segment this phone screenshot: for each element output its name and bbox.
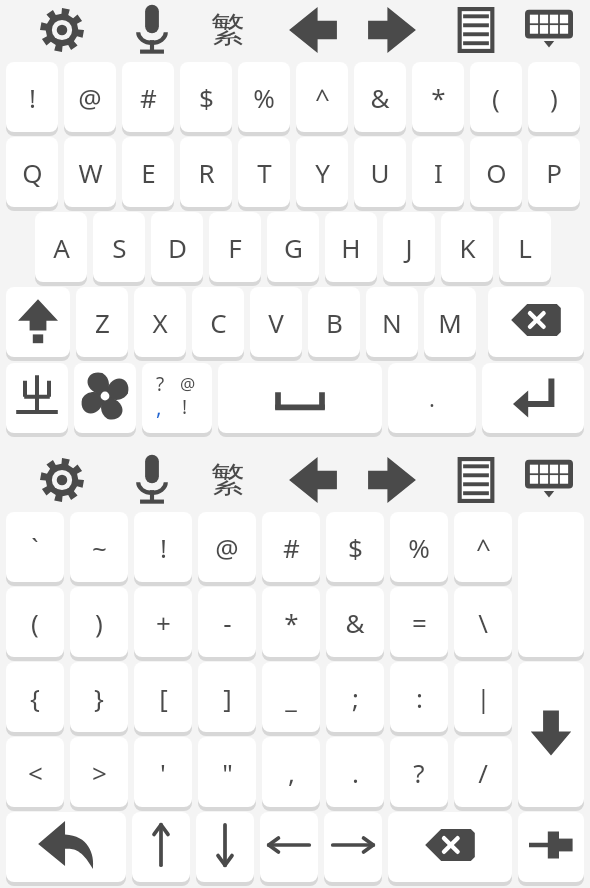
- button[interactable]: .: [326, 737, 384, 811]
- button[interactable]: !: [6, 62, 58, 136]
- button[interactable]: >: [70, 737, 128, 811]
- button[interactable]: ~: [70, 512, 128, 586]
- button[interactable]: /: [454, 737, 512, 811]
- staticText: ?: [156, 371, 165, 397]
- button[interactable]: Backspace: [488, 287, 584, 361]
- button[interactable]: H: [325, 212, 377, 286]
- button[interactable]: V: [250, 287, 302, 361]
- button[interactable]: Q: [6, 137, 58, 211]
- button[interactable]: Undo: [6, 812, 126, 886]
- button[interactable]: Up: [132, 812, 190, 886]
- button[interactable]: %: [238, 62, 290, 136]
- button[interactable]: G: [267, 212, 319, 286]
- button[interactable]: 繁: [198, 452, 258, 506]
- button[interactable]: ': [134, 737, 192, 811]
- button[interactable]: %: [390, 512, 448, 586]
- button[interactable]: Settings: [28, 4, 96, 56]
- button[interactable]: ;: [326, 662, 384, 736]
- button[interactable]: Settings: [28, 454, 96, 506]
- button[interactable]: N: [366, 287, 418, 361]
- button[interactable]: Space: [218, 363, 382, 437]
- button[interactable]: K: [441, 212, 493, 286]
- button[interactable]: Left: [260, 812, 318, 886]
- button[interactable]: Shift: [6, 287, 70, 361]
- button[interactable]: ^: [454, 512, 512, 586]
- button[interactable]: Move right: [361, 4, 423, 56]
- button[interactable]: T: [238, 137, 290, 211]
- button[interactable]: !: [134, 512, 192, 586]
- button[interactable]: Enter: [482, 363, 584, 437]
- button[interactable]: F: [209, 212, 261, 286]
- button[interactable]: J: [383, 212, 435, 286]
- button[interactable]: *: [262, 587, 320, 661]
- button[interactable]: W: [64, 137, 116, 211]
- button[interactable]: @: [64, 62, 116, 136]
- button[interactable]: Options: [74, 363, 136, 437]
- button[interactable]: L: [499, 212, 551, 286]
- button[interactable]: ): [70, 587, 128, 661]
- button[interactable]: Punctuation: [142, 363, 212, 437]
- button[interactable]: .: [388, 363, 476, 437]
- button[interactable]: @: [198, 512, 256, 586]
- button[interactable]: $: [180, 62, 232, 136]
- button[interactable]: R: [180, 137, 232, 211]
- button[interactable]: I: [412, 137, 464, 211]
- button[interactable]: Move left: [282, 454, 344, 506]
- button[interactable]: Candidates: [447, 454, 505, 506]
- button[interactable]: Candidates: [447, 4, 505, 56]
- button[interactable]: A: [35, 212, 87, 286]
- button[interactable]: Page down: [518, 662, 584, 811]
- button[interactable]: $: [326, 512, 384, 586]
- button[interactable]: +: [134, 587, 192, 661]
- button[interactable]: C: [192, 287, 244, 361]
- button[interactable]: Voice input: [123, 454, 181, 506]
- button[interactable]: Input mode: [6, 363, 68, 437]
- button[interactable]: ): [528, 62, 580, 136]
- button[interactable]: <: [6, 737, 64, 811]
- button[interactable]: \: [454, 587, 512, 661]
- button[interactable]: }: [70, 662, 128, 736]
- button[interactable]: S: [93, 212, 145, 286]
- button[interactable]: Backspace: [388, 812, 512, 886]
- button[interactable]: O: [470, 137, 522, 211]
- button[interactable]: Hide keyboard: [518, 454, 580, 508]
- button[interactable]: U: [354, 137, 406, 211]
- button[interactable]: [: [134, 662, 192, 736]
- button[interactable]: Y: [296, 137, 348, 211]
- button[interactable]: M: [424, 287, 476, 361]
- button[interactable]: Blank: [518, 512, 584, 661]
- button[interactable]: ^: [296, 62, 348, 136]
- button[interactable]: Pin keyboard: [518, 812, 584, 886]
- button[interactable]: *: [412, 62, 464, 136]
- button[interactable]: {: [6, 662, 64, 736]
- button[interactable]: -: [198, 587, 256, 661]
- button[interactable]: _: [262, 662, 320, 736]
- button[interactable]: E: [122, 137, 174, 211]
- button[interactable]: X: [134, 287, 186, 361]
- button[interactable]: ]: [198, 662, 256, 736]
- button[interactable]: #: [262, 512, 320, 586]
- button[interactable]: |: [454, 662, 512, 736]
- button[interactable]: Z: [76, 287, 128, 361]
- button[interactable]: Right: [324, 812, 382, 886]
- button[interactable]: (: [6, 587, 64, 661]
- button[interactable]: &: [354, 62, 406, 136]
- button[interactable]: ": [198, 737, 256, 811]
- button[interactable]: Move left: [282, 4, 344, 56]
- button[interactable]: Down: [196, 812, 254, 886]
- button[interactable]: `: [6, 512, 64, 586]
- button[interactable]: Hide keyboard: [518, 4, 580, 58]
- button[interactable]: #: [122, 62, 174, 136]
- button[interactable]: =: [390, 587, 448, 661]
- button[interactable]: D: [151, 212, 203, 286]
- button[interactable]: ,: [262, 737, 320, 811]
- button[interactable]: &: [326, 587, 384, 661]
- button[interactable]: :: [390, 662, 448, 736]
- button[interactable]: B: [308, 287, 360, 361]
- button[interactable]: Voice input: [123, 4, 181, 56]
- button[interactable]: ?: [390, 737, 448, 811]
- button[interactable]: Move right: [361, 454, 423, 506]
- button[interactable]: P: [528, 137, 580, 211]
- button[interactable]: 繁: [198, 2, 258, 56]
- button[interactable]: (: [470, 62, 522, 136]
